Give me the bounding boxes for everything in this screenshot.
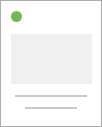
- button[interactable]: Profile avatar: [11, 11, 22, 22]
- button[interactable]: Profile avatar: [0, 0, 102, 127]
